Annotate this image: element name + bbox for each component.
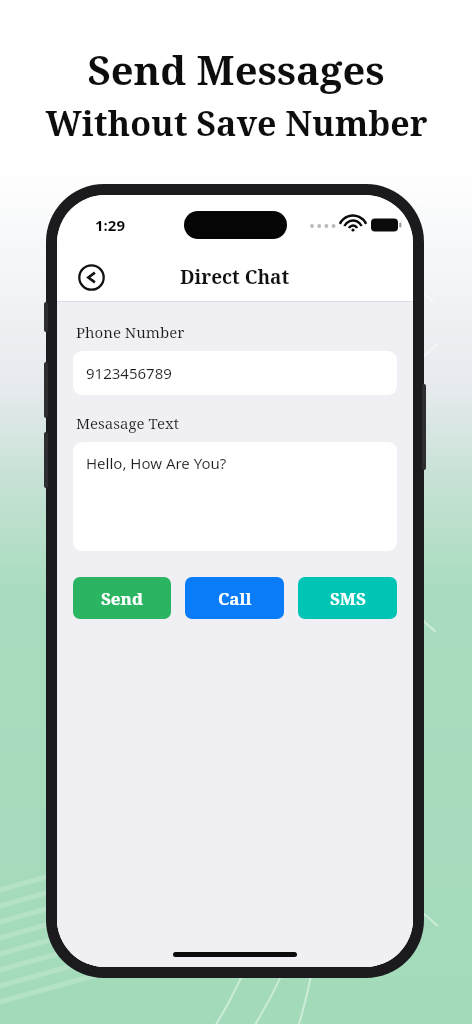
staticText: Send Messages <box>87 42 385 96</box>
staticText: SMS <box>330 587 366 610</box>
button[interactable]: Call <box>185 577 284 619</box>
button[interactable]: 9123456789 <box>73 351 397 395</box>
button[interactable]: Hello, How Are You? <box>73 442 397 551</box>
staticText: Direct Chat <box>180 264 290 290</box>
staticText: Hello, How Are You? <box>86 453 227 473</box>
staticText: Mesasage Text <box>76 413 179 433</box>
button[interactable]: Send <box>73 577 171 619</box>
staticText: 1:29 <box>95 215 125 235</box>
staticText: Phone Number <box>76 322 185 342</box>
staticText: 9123456789 <box>86 363 172 383</box>
staticText: Call <box>218 587 252 610</box>
staticText: Send <box>101 587 143 610</box>
button[interactable]: SMS <box>298 577 397 619</box>
button[interactable]: Back <box>71 257 111 297</box>
staticText: Without Save Number <box>45 100 428 146</box>
